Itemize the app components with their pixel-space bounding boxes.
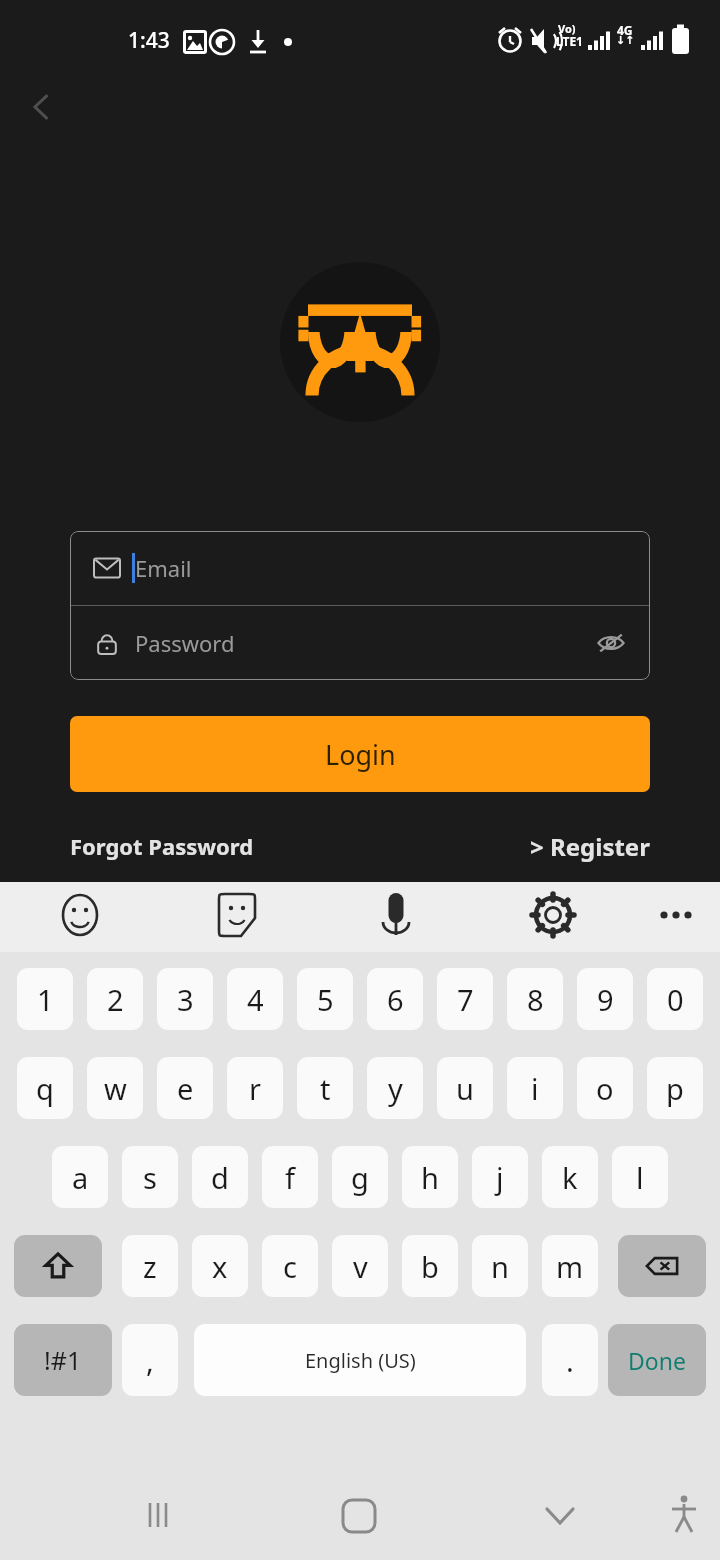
button[interactable]: 6 xyxy=(367,968,423,1030)
staticText: 1 xyxy=(37,980,54,1019)
button[interactable]: Login xyxy=(70,716,650,792)
button[interactable]: 4 xyxy=(227,968,283,1030)
staticText: 9 xyxy=(597,980,614,1019)
staticText: c xyxy=(283,1247,297,1286)
staticText: 4G xyxy=(617,22,633,38)
button[interactable]: j xyxy=(472,1146,528,1208)
staticText: q xyxy=(36,1069,54,1108)
button[interactable]: h xyxy=(402,1146,458,1208)
staticText: j xyxy=(496,1158,504,1197)
staticText: . xyxy=(566,1341,574,1380)
button[interactable]: , xyxy=(122,1324,178,1396)
button[interactable]: 3 xyxy=(157,968,213,1030)
button[interactable]: x xyxy=(192,1235,248,1297)
button[interactable]: b xyxy=(402,1235,458,1297)
button[interactable]: Shift xyxy=(14,1235,102,1297)
button[interactable]: 8 xyxy=(507,968,563,1030)
staticText: h xyxy=(421,1158,439,1197)
button[interactable]: English (US) xyxy=(194,1324,526,1396)
button[interactable]: k xyxy=(542,1146,598,1208)
button[interactable]: i xyxy=(507,1057,563,1119)
button[interactable]: w xyxy=(87,1057,143,1119)
button[interactable]: Password xyxy=(70,606,650,680)
staticText: 5 xyxy=(317,980,334,1019)
button[interactable]: z xyxy=(122,1235,178,1297)
button[interactable]: Home xyxy=(180,1470,360,1560)
staticText: LTE1 xyxy=(556,33,583,49)
button[interactable]: e xyxy=(157,1057,213,1119)
button[interactable]: Backspace xyxy=(618,1235,706,1297)
staticText: 6 xyxy=(387,980,404,1019)
button[interactable]: u xyxy=(437,1057,493,1119)
staticText: 1:43 xyxy=(128,26,170,55)
staticText: Forgot Password xyxy=(70,831,254,861)
staticText: 8 xyxy=(527,980,544,1019)
staticText: l xyxy=(636,1158,644,1197)
button[interactable]: . xyxy=(542,1324,598,1396)
staticText: English (US) xyxy=(305,1347,416,1374)
button[interactable]: 5 xyxy=(297,968,353,1030)
button[interactable]: Done xyxy=(608,1324,706,1396)
staticText: 4 xyxy=(247,980,264,1019)
staticText: Password xyxy=(135,628,235,658)
button[interactable]: s xyxy=(122,1146,178,1208)
button[interactable]: q xyxy=(17,1057,73,1119)
staticText: o xyxy=(596,1069,614,1108)
staticText: > Register xyxy=(530,830,650,863)
staticText: n xyxy=(491,1247,509,1286)
button[interactable]: n xyxy=(472,1235,528,1297)
staticText: 7 xyxy=(457,980,474,1019)
staticText: Done xyxy=(628,1345,686,1376)
staticText: f xyxy=(285,1158,295,1197)
staticText: e xyxy=(177,1069,194,1108)
staticText: g xyxy=(351,1158,369,1197)
button[interactable]: !#1 xyxy=(14,1324,112,1396)
staticText: p xyxy=(666,1069,684,1108)
staticText: b xyxy=(421,1247,439,1286)
staticText: Vo) xyxy=(558,21,576,36)
button[interactable]: l xyxy=(612,1146,668,1208)
button[interactable]: m xyxy=(542,1235,598,1297)
button[interactable]: Email xyxy=(70,531,650,605)
staticText: Login xyxy=(325,736,396,773)
staticText: , xyxy=(146,1341,154,1380)
staticText: m xyxy=(556,1247,584,1286)
button[interactable]: t xyxy=(297,1057,353,1119)
button[interactable]: f xyxy=(262,1146,318,1208)
button[interactable]: Accessibility xyxy=(540,1470,720,1560)
button[interactable]: 2 xyxy=(87,968,143,1030)
staticText: x xyxy=(212,1247,228,1286)
staticText: 2 xyxy=(107,980,124,1019)
button[interactable]: 9 xyxy=(577,968,633,1030)
button[interactable]: d xyxy=(192,1146,248,1208)
button[interactable]: 7 xyxy=(437,968,493,1030)
staticText: z xyxy=(143,1247,157,1286)
button[interactable]: a xyxy=(52,1146,108,1208)
staticText: ↓↑ xyxy=(616,34,635,47)
button[interactable]: p xyxy=(647,1057,703,1119)
staticText: !#1 xyxy=(44,1343,82,1377)
staticText: t xyxy=(320,1069,331,1108)
button[interactable]: c xyxy=(262,1235,318,1297)
button[interactable]: > Register xyxy=(530,830,650,863)
button[interactable]: Back xyxy=(360,1470,540,1560)
button[interactable]: o xyxy=(577,1057,633,1119)
staticText: r xyxy=(249,1069,261,1108)
staticText: v xyxy=(353,1247,368,1286)
button[interactable]: 0 xyxy=(647,968,703,1030)
button[interactable]: 1 xyxy=(17,968,73,1030)
staticText: s xyxy=(143,1158,157,1197)
button[interactable]: Forgot Password xyxy=(70,831,254,861)
staticText: 0 xyxy=(667,980,684,1019)
button[interactable]: r xyxy=(227,1057,283,1119)
button[interactable]: v xyxy=(332,1235,388,1297)
staticText: a xyxy=(72,1158,89,1197)
button[interactable]: g xyxy=(332,1146,388,1208)
button[interactable]: Show password xyxy=(594,626,628,660)
button[interactable]: y xyxy=(367,1057,423,1119)
staticText: w xyxy=(104,1069,127,1108)
staticText: k xyxy=(562,1158,578,1197)
button[interactable]: Recents xyxy=(0,1470,180,1560)
button[interactable]: Back xyxy=(12,78,70,136)
staticText: 3 xyxy=(177,980,194,1019)
